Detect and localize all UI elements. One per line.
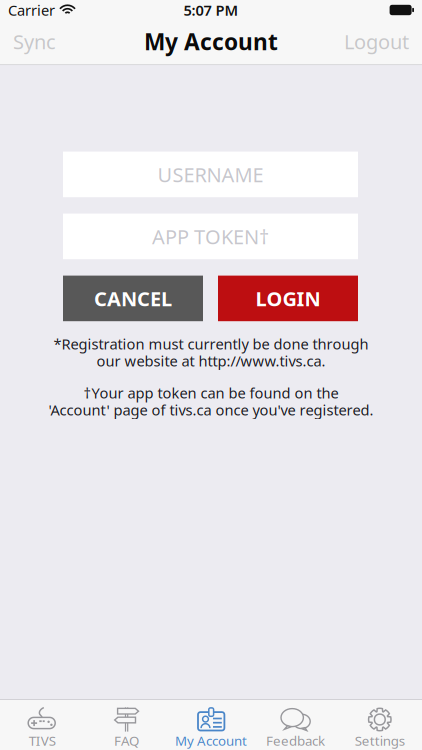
button[interactable]: TIVS <box>0 700 84 750</box>
staticText: Feedback <box>266 732 325 749</box>
staticText: Logout <box>344 28 409 55</box>
button[interactable]: Logout <box>334 20 422 63</box>
button[interactable]: My Account <box>169 700 253 750</box>
button[interactable]: FAQ <box>84 700 169 750</box>
button[interactable]: USERNAME <box>63 152 358 197</box>
button[interactable]: Sync <box>0 20 66 63</box>
staticText: Carrier <box>8 0 55 20</box>
staticText: Settings <box>355 732 405 749</box>
button[interactable]: CANCEL <box>63 276 203 321</box>
staticText: FAQ <box>114 732 139 749</box>
staticText: our website at http://www.tivs.ca. <box>96 351 325 370</box>
button[interactable]: Settings <box>338 700 422 750</box>
staticText: CANCEL <box>94 285 172 312</box>
staticText: My Account <box>144 26 278 56</box>
staticText: APP TOKEN† <box>152 223 269 250</box>
button[interactable]: LOGIN <box>218 276 358 321</box>
staticText: Sync <box>13 28 56 55</box>
staticText: LOGIN <box>255 285 320 312</box>
staticText: †Your app token can be found on the <box>83 383 338 402</box>
staticText: My Account <box>175 732 247 749</box>
staticText: TIVS <box>29 732 56 749</box>
staticText: 'Account' page of tivs.ca once you've re… <box>48 400 373 419</box>
staticText: 5:07 PM <box>183 0 238 20</box>
staticText: USERNAME <box>157 161 263 188</box>
button[interactable]: APP TOKEN† <box>63 214 358 259</box>
button[interactable]: Feedback <box>253 700 338 750</box>
staticText: *Registration must currently be done thr… <box>53 334 368 353</box>
